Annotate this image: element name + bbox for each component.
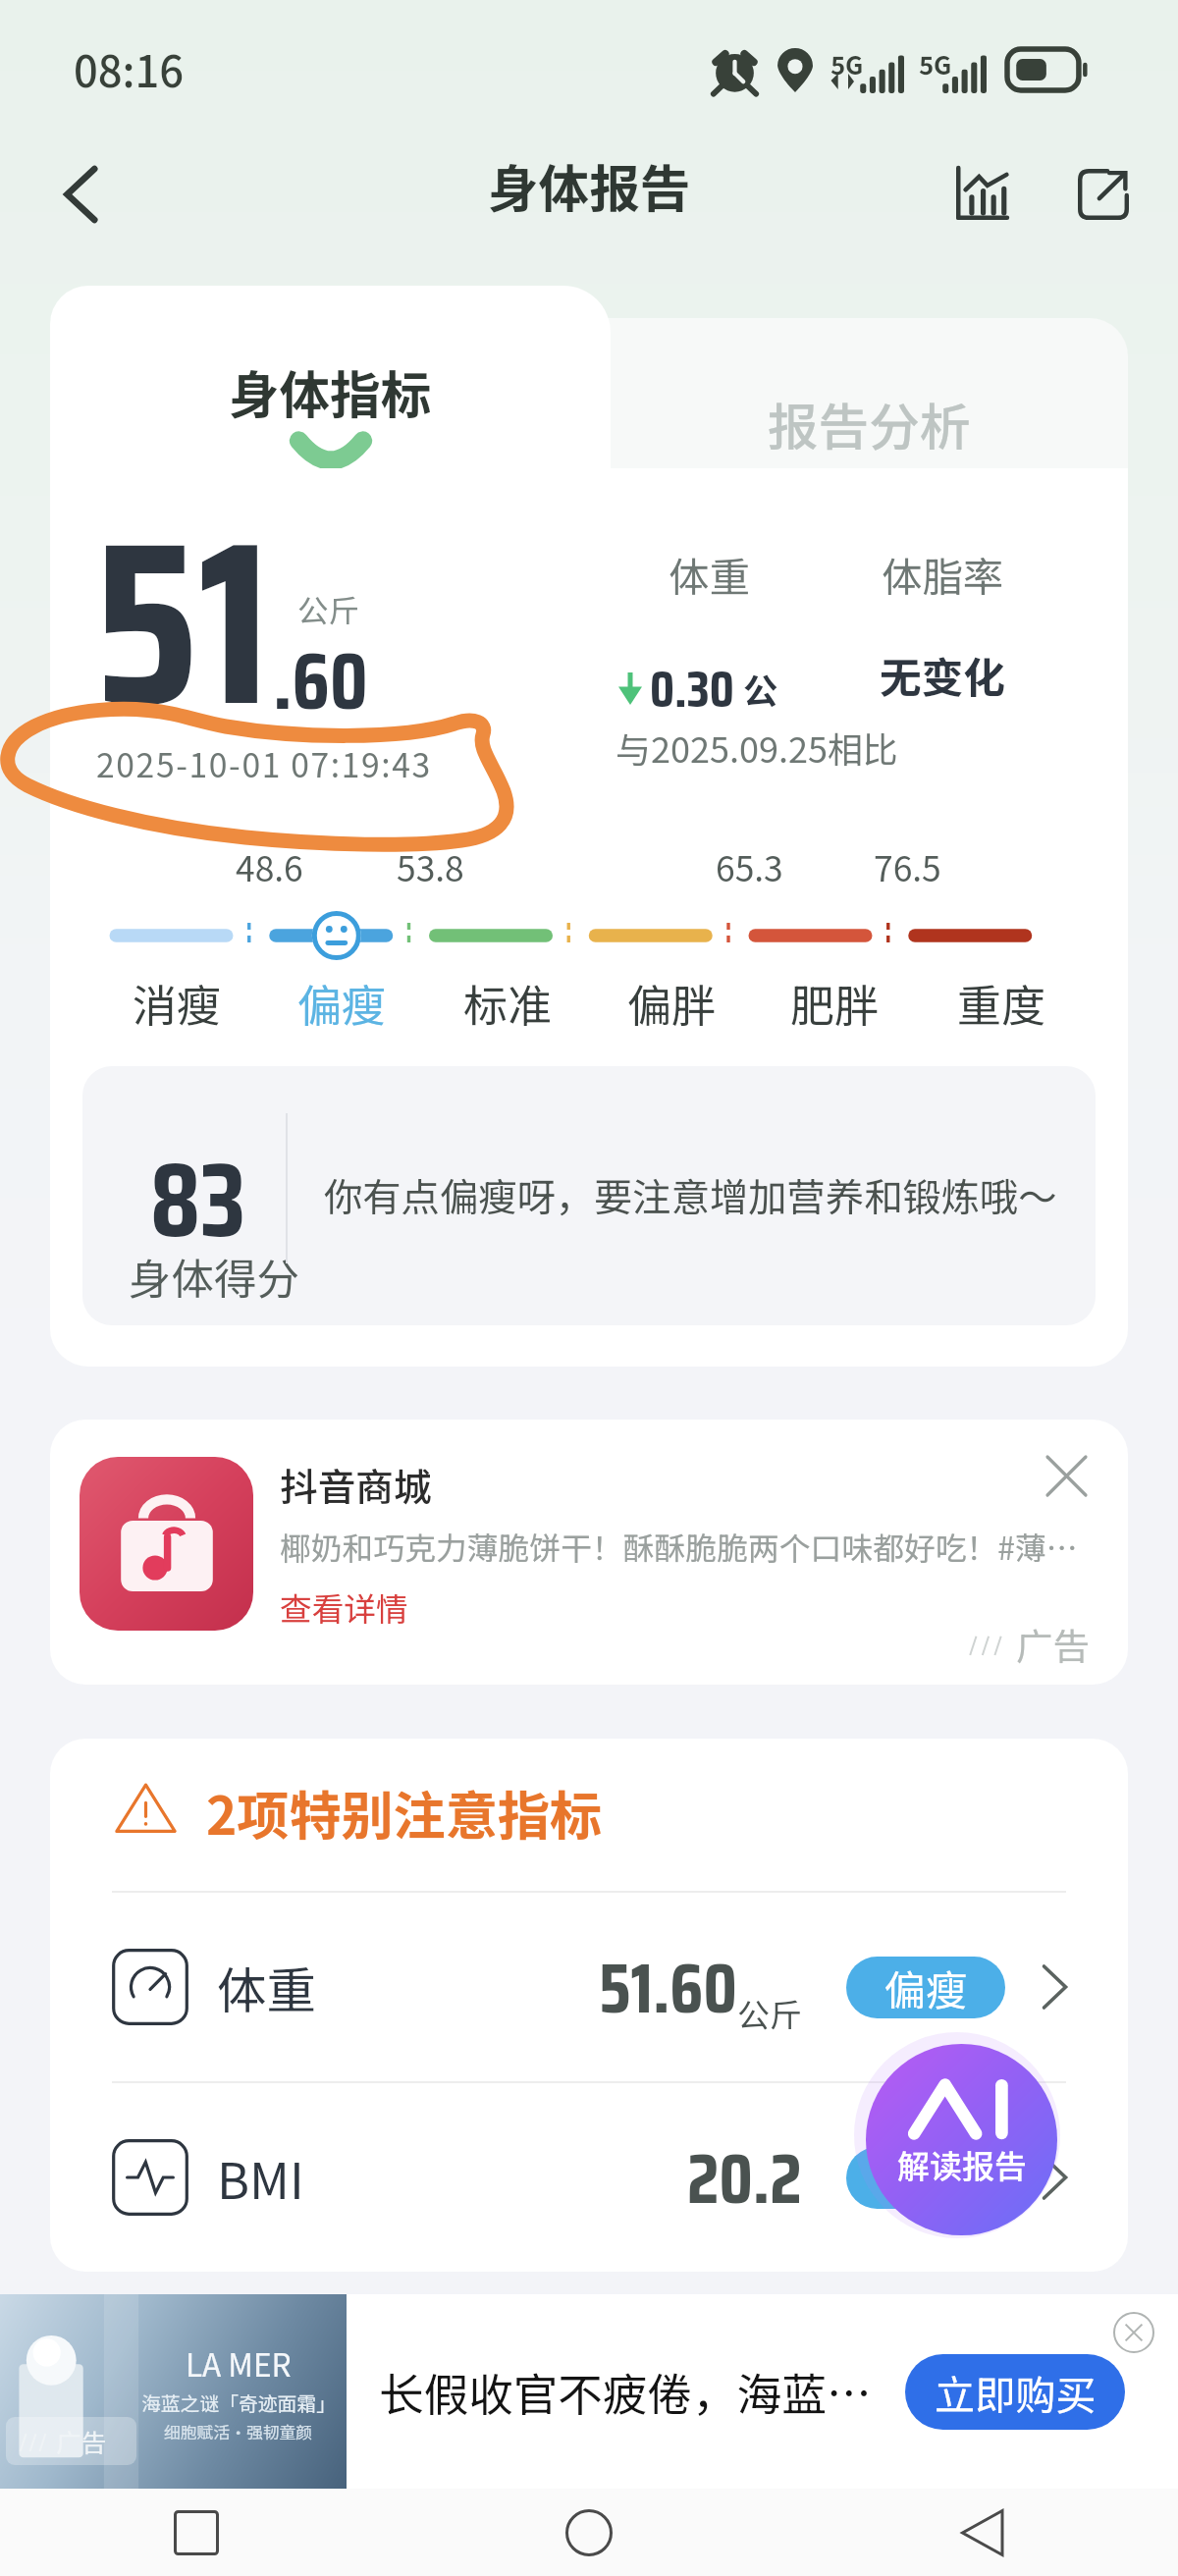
staticText: 76.5: [874, 841, 941, 891]
staticText: 体脂率: [882, 545, 1004, 604]
button[interactable]: 最近任务: [0, 2489, 393, 2576]
staticText: 抖音商城: [280, 1457, 432, 1512]
staticText: 你有点偏瘦呀，要注意增加营养和锻炼哦～: [324, 1166, 1057, 1222]
staticText: 5G: [919, 45, 952, 81]
staticText: 2025-10-01 07:19:43: [96, 739, 432, 787]
staticText: 肥胖: [790, 971, 880, 1035]
staticText: 公斤: [743, 664, 801, 714]
button[interactable]: BMI: [50, 2083, 1128, 2272]
staticText: 标准: [463, 971, 553, 1035]
staticText: 48.6: [236, 841, 303, 891]
staticText: 0.30: [650, 648, 734, 729]
staticText: 立即购买: [935, 2363, 1097, 2422]
staticText: 53.8: [397, 841, 464, 891]
staticText: 偏胖: [627, 971, 717, 1035]
button[interactable]: 关闭广告: [1034, 1443, 1098, 1508]
staticText: 83: [150, 1119, 246, 1281]
staticText: 偏瘦: [884, 2148, 968, 2208]
staticText: 长假收官不疲倦，海蓝…: [379, 2359, 872, 2424]
staticText: 身体指标: [229, 354, 432, 428]
button[interactable]: 抖音商城: [50, 1420, 1128, 1685]
staticText: 无变化: [880, 645, 1005, 706]
button[interactable]: 报告分析: [611, 286, 1128, 468]
staticText: 身体报告: [488, 148, 691, 222]
staticText: 报告分析: [768, 387, 971, 460]
staticText: .60: [273, 618, 368, 743]
staticText: 偏瘦: [297, 971, 387, 1035]
staticText: 解读报告: [897, 2141, 1027, 2188]
button[interactable]: 主页: [393, 2489, 785, 2576]
staticText: 20.2: [687, 2122, 802, 2233]
staticText: 偏瘦: [884, 1958, 968, 2017]
staticText: 5G: [830, 45, 864, 81]
staticText: 身体得分: [129, 1246, 299, 1308]
staticText: 08:16: [74, 38, 185, 100]
staticText: 2项特别注意指标: [206, 1774, 602, 1850]
button[interactable]: AI 解读报告: [866, 2044, 1057, 2235]
staticText: 体重: [217, 1952, 316, 2023]
button[interactable]: 身体指标: [50, 286, 611, 468]
staticText: LA MER: [186, 2340, 292, 2386]
staticText: 广告: [56, 2423, 107, 2459]
staticText: 查看详情: [280, 1583, 408, 1630]
button[interactable]: 数据图表: [928, 139, 1037, 248]
staticText: BMI: [217, 2142, 304, 2214]
staticText: 与2025.09.25相比: [616, 722, 898, 773]
button[interactable]: 分享: [1048, 139, 1157, 248]
staticText: 65.3: [716, 841, 783, 891]
button[interactable]: 体重: [50, 1893, 1128, 2081]
staticText: 51: [94, 468, 270, 803]
staticText: 海蓝之谜「奇迹面霜」: [141, 2388, 336, 2417]
button[interactable]: 返回: [26, 139, 134, 248]
button[interactable]: 关闭: [1104, 2303, 1163, 2362]
staticText: 公斤: [737, 1990, 802, 2037]
staticText: 体重: [669, 545, 750, 604]
staticText: 广告: [1016, 1617, 1090, 1670]
staticText: 消瘦: [133, 971, 222, 1035]
staticText: 重度: [957, 971, 1046, 1035]
staticText: 细胞赋活·强韧童颜: [164, 2420, 313, 2443]
button[interactable]: 立即购买: [905, 2354, 1125, 2430]
staticText: 椰奶和巧克力薄脆饼干！酥酥脆脆两个口味都好吃！#薄…: [280, 1524, 1078, 1569]
button[interactable]: 返回: [785, 2489, 1178, 2576]
staticText: 公斤: [297, 586, 360, 631]
staticText: 51.60: [599, 1932, 737, 2043]
